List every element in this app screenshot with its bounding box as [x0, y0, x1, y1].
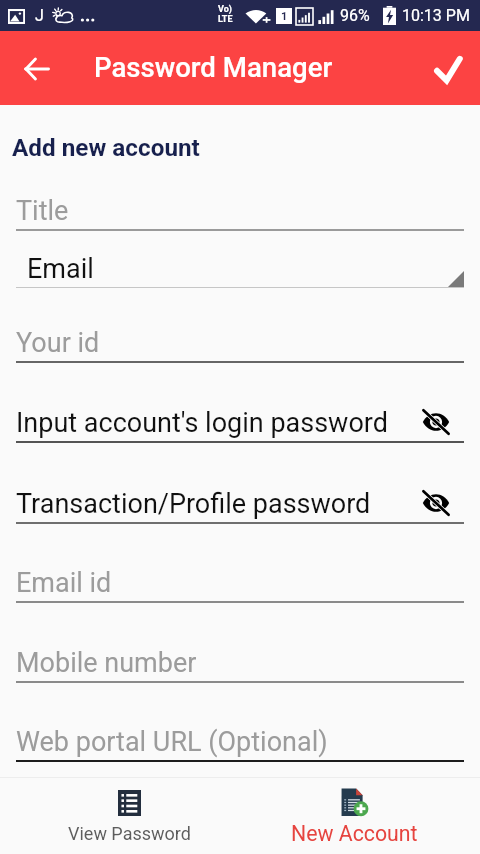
staticText: Add new account [12, 133, 200, 161]
button[interactable]: Web portal URL (Optional) [0, 714, 480, 762]
staticText: Web portal URL (Optional) [16, 726, 328, 758]
button[interactable]: Transaction/Profile password [0, 476, 480, 524]
staticText: 96% [340, 6, 370, 25]
staticText: Your id [16, 327, 100, 359]
staticText: Title [16, 195, 69, 227]
button[interactable]: Account type Email [0, 245, 480, 289]
button[interactable]: Toggle password visibility [417, 403, 455, 441]
button[interactable]: Back [13, 45, 61, 93]
staticText: Input account's login password [16, 407, 388, 439]
staticText: Email id [16, 567, 112, 599]
staticText: View Password [68, 823, 191, 844]
staticText: Vo) LTE [218, 4, 233, 24]
staticText: Password Manager [94, 51, 333, 83]
button[interactable]: Email id [0, 555, 480, 603]
staticText: Transaction/Profile password [16, 488, 371, 520]
button[interactable]: View Password [29, 778, 229, 854]
button[interactable]: Input account's login password [0, 395, 480, 443]
staticText: New Account [291, 821, 418, 846]
button[interactable]: New Account [254, 778, 454, 854]
staticText: 10:13 PM [402, 6, 470, 25]
staticText: Email [27, 253, 94, 285]
staticText: 1 [281, 10, 288, 23]
button[interactable]: Save [425, 45, 473, 93]
staticText: J [35, 6, 44, 25]
button[interactable]: Toggle password visibility [417, 484, 455, 522]
button[interactable]: Title [0, 183, 480, 231]
staticText: Mobile number [16, 647, 197, 679]
button[interactable]: Your id [0, 315, 480, 363]
button[interactable]: Mobile number [0, 635, 480, 683]
